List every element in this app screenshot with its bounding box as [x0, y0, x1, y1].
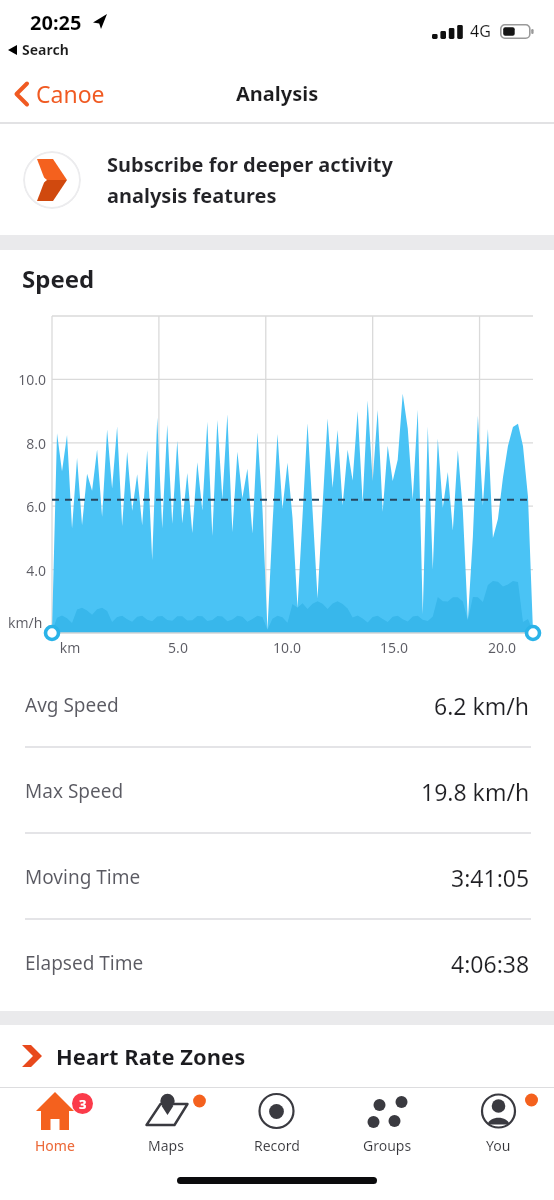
button[interactable]: Maps [110, 1088, 221, 1200]
button[interactable]: Heart Rate Zones [0, 1025, 554, 1087]
staticText: Maps [148, 1136, 184, 1155]
staticText: km/h [8, 613, 43, 632]
staticText: Groups [363, 1136, 412, 1155]
staticText: Speed [22, 262, 95, 295]
staticText: 10.0 [6, 370, 46, 389]
staticText: 20:25 [30, 9, 82, 36]
staticText: You [486, 1136, 511, 1155]
staticText: 5.0 [156, 638, 200, 657]
button[interactable]: Avg Speed [0, 662, 554, 748]
button[interactable]: Moving Time [0, 834, 554, 920]
staticText: 3:41:05 [451, 862, 530, 893]
staticText: Avg Speed [25, 692, 119, 718]
staticText: Elapsed Time [25, 950, 144, 976]
button[interactable]: Record [221, 1088, 332, 1200]
staticText: Heart Rate Zones [56, 1041, 246, 1071]
staticText: 4.0 [6, 561, 46, 580]
staticText: Record [254, 1136, 300, 1155]
staticText: Max Speed [25, 778, 124, 804]
staticText: 19.8 km/h [421, 776, 530, 807]
button[interactable]: Canoe [14, 78, 105, 109]
staticText: 15.0 [372, 638, 416, 657]
staticText: 10.0 [265, 638, 309, 657]
staticText: 6.2 km/h [434, 690, 530, 721]
staticText: Home [35, 1136, 75, 1155]
button[interactable]: Home [0, 1088, 110, 1200]
staticText: Search [22, 40, 69, 59]
staticText: 20.0 [480, 638, 524, 657]
staticText: km [48, 638, 92, 657]
button[interactable]: You [443, 1088, 554, 1200]
button[interactable]: Groups [332, 1088, 443, 1200]
staticText: Moving Time [25, 864, 141, 890]
button[interactable]: Subscribe for deeper activity analysis f… [0, 124, 554, 235]
staticText: 4:06:38 [451, 948, 530, 979]
staticText: 4G [470, 20, 491, 42]
button[interactable]: Max Speed [0, 748, 554, 834]
staticText: Canoe [36, 78, 105, 109]
staticText: 8.0 [6, 434, 46, 453]
button[interactable]: Elapsed Time [0, 920, 554, 1006]
staticText: Subscribe for deeper activity analysis f… [107, 151, 393, 208]
staticText: Analysis [236, 80, 319, 107]
staticText: 6.0 [6, 497, 46, 516]
staticText: 3 [79, 1095, 87, 1113]
